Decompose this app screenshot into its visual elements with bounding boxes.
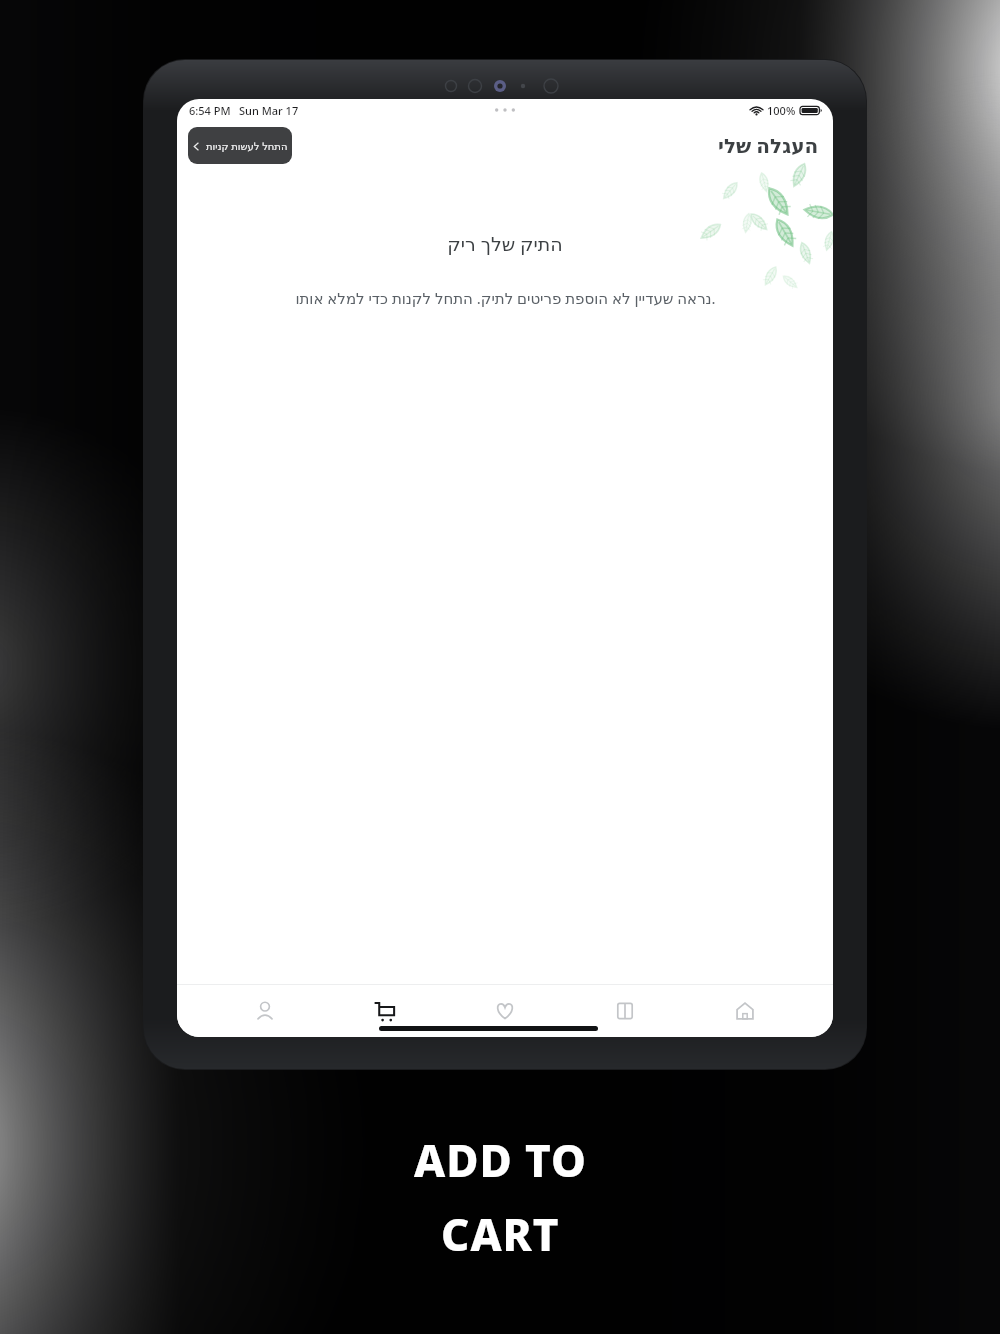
button[interactable]: Wishlist <box>473 988 537 1034</box>
staticText: ADD TO <box>414 1130 587 1190</box>
staticText: 100% <box>767 103 796 118</box>
button[interactable]: Account <box>233 988 297 1034</box>
staticText: התחל לעשות קניות <box>206 139 288 153</box>
staticText: Sun Mar 17 <box>239 103 299 118</box>
button[interactable]: Home <box>713 988 777 1034</box>
button[interactable]: Categories <box>593 988 657 1034</box>
staticText: התיק שלך ריק <box>447 231 563 257</box>
button[interactable]: Cart <box>353 988 417 1034</box>
staticText: נראה שעדיין לא הוספת פריטים לתיק. התחל ל… <box>295 288 716 308</box>
button[interactable]: התחל לעשות קניות <box>188 127 292 164</box>
staticText: CART <box>441 1204 560 1264</box>
staticText: 6:54 PM <box>189 103 231 118</box>
staticText: העגלה שלי <box>718 132 819 159</box>
